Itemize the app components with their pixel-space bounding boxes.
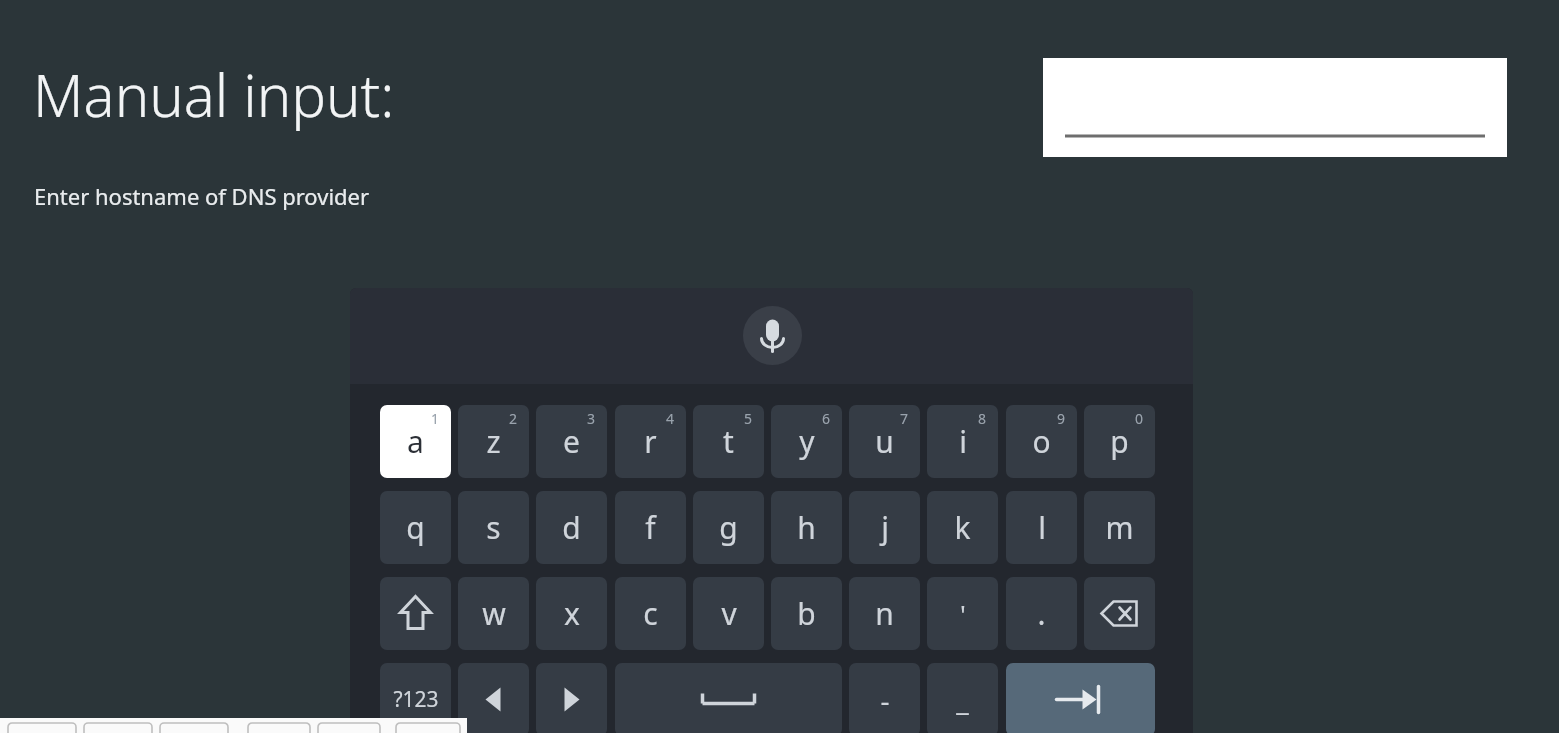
staticText: k xyxy=(954,507,971,548)
button[interactable]: b xyxy=(771,577,842,650)
staticText: w xyxy=(482,593,506,634)
button[interactable]: l xyxy=(1006,491,1077,564)
staticText: t xyxy=(723,421,734,462)
button[interactable]: a xyxy=(380,405,451,478)
staticText: z xyxy=(486,421,501,462)
button[interactable]: h xyxy=(771,491,842,564)
button[interactable]: m xyxy=(1084,491,1155,564)
button[interactable]: r xyxy=(615,405,686,478)
staticText: u xyxy=(875,421,894,462)
staticText: e xyxy=(563,421,580,462)
staticText: 3 xyxy=(587,409,596,428)
button[interactable]: . xyxy=(1006,577,1077,650)
staticText: r xyxy=(644,421,657,462)
button[interactable]: s xyxy=(458,491,529,564)
staticText: Manual input: xyxy=(33,55,395,134)
button[interactable]: e xyxy=(536,405,607,478)
staticText: 7 xyxy=(900,409,909,428)
staticText: . xyxy=(1037,593,1046,634)
staticText: h xyxy=(797,507,816,548)
button[interactable]: d xyxy=(536,491,607,564)
button[interactable]: n xyxy=(849,577,920,650)
staticText: 6 xyxy=(822,409,831,428)
staticText: 2 xyxy=(509,409,518,428)
button[interactable]: Move cursor right xyxy=(536,663,607,733)
button[interactable]: Voice input xyxy=(743,306,802,365)
staticText: 8 xyxy=(978,409,987,428)
staticText: x xyxy=(564,593,580,634)
staticText: 5 xyxy=(744,409,753,428)
button[interactable]: Space xyxy=(615,663,842,733)
button[interactable]: p xyxy=(1084,405,1155,478)
staticText: g xyxy=(719,507,738,548)
staticText: m xyxy=(1105,507,1134,548)
staticText: ?123 xyxy=(393,685,439,714)
button[interactable]: v xyxy=(693,577,764,650)
button[interactable]: ?123 xyxy=(380,663,451,733)
staticText: p xyxy=(1110,421,1129,462)
staticText: 0 xyxy=(1135,409,1144,428)
staticText: 4 xyxy=(666,409,675,428)
staticText: n xyxy=(875,593,894,634)
button[interactable]: g xyxy=(693,491,764,564)
button[interactable]: i xyxy=(927,405,998,478)
button[interactable]: u xyxy=(849,405,920,478)
staticText: - xyxy=(880,681,890,719)
staticText: 1 xyxy=(431,409,440,428)
staticText: 9 xyxy=(1057,409,1066,428)
button[interactable]: j xyxy=(849,491,920,564)
button[interactable]: Hostname input field xyxy=(1043,58,1507,157)
staticText: s xyxy=(486,507,501,548)
staticText: a xyxy=(407,421,424,462)
button[interactable]: _ xyxy=(927,663,998,733)
staticText: l xyxy=(1038,507,1046,548)
staticText: Enter hostname of DNS provider xyxy=(34,181,370,211)
staticText: i xyxy=(959,421,967,462)
staticText: f xyxy=(645,507,656,548)
button[interactable]: - xyxy=(849,663,920,733)
button[interactable]: q xyxy=(380,491,451,564)
staticText: ' xyxy=(960,596,966,631)
button[interactable]: z xyxy=(458,405,529,478)
button[interactable]: k xyxy=(927,491,998,564)
button[interactable]: y xyxy=(771,405,842,478)
staticText: d xyxy=(562,507,581,548)
button[interactable]: Tab xyxy=(1006,663,1155,733)
button[interactable]: x xyxy=(536,577,607,650)
button[interactable]: Move cursor left xyxy=(458,663,529,733)
button[interactable]: ' xyxy=(927,577,998,650)
staticText: c xyxy=(643,593,658,634)
staticText: b xyxy=(797,593,816,634)
button[interactable]: w xyxy=(458,577,529,650)
staticText: o xyxy=(1032,421,1051,462)
button[interactable]: c xyxy=(615,577,686,650)
button[interactable]: Backspace xyxy=(1084,577,1155,650)
staticText: q xyxy=(406,507,425,548)
staticText: v xyxy=(721,593,737,634)
staticText: y xyxy=(799,421,815,462)
button[interactable]: Shift xyxy=(380,577,451,650)
button[interactable]: o xyxy=(1006,405,1077,478)
button[interactable]: t xyxy=(693,405,764,478)
staticText: _ xyxy=(956,681,969,719)
button[interactable]: f xyxy=(615,491,686,564)
staticText: j xyxy=(881,507,889,548)
